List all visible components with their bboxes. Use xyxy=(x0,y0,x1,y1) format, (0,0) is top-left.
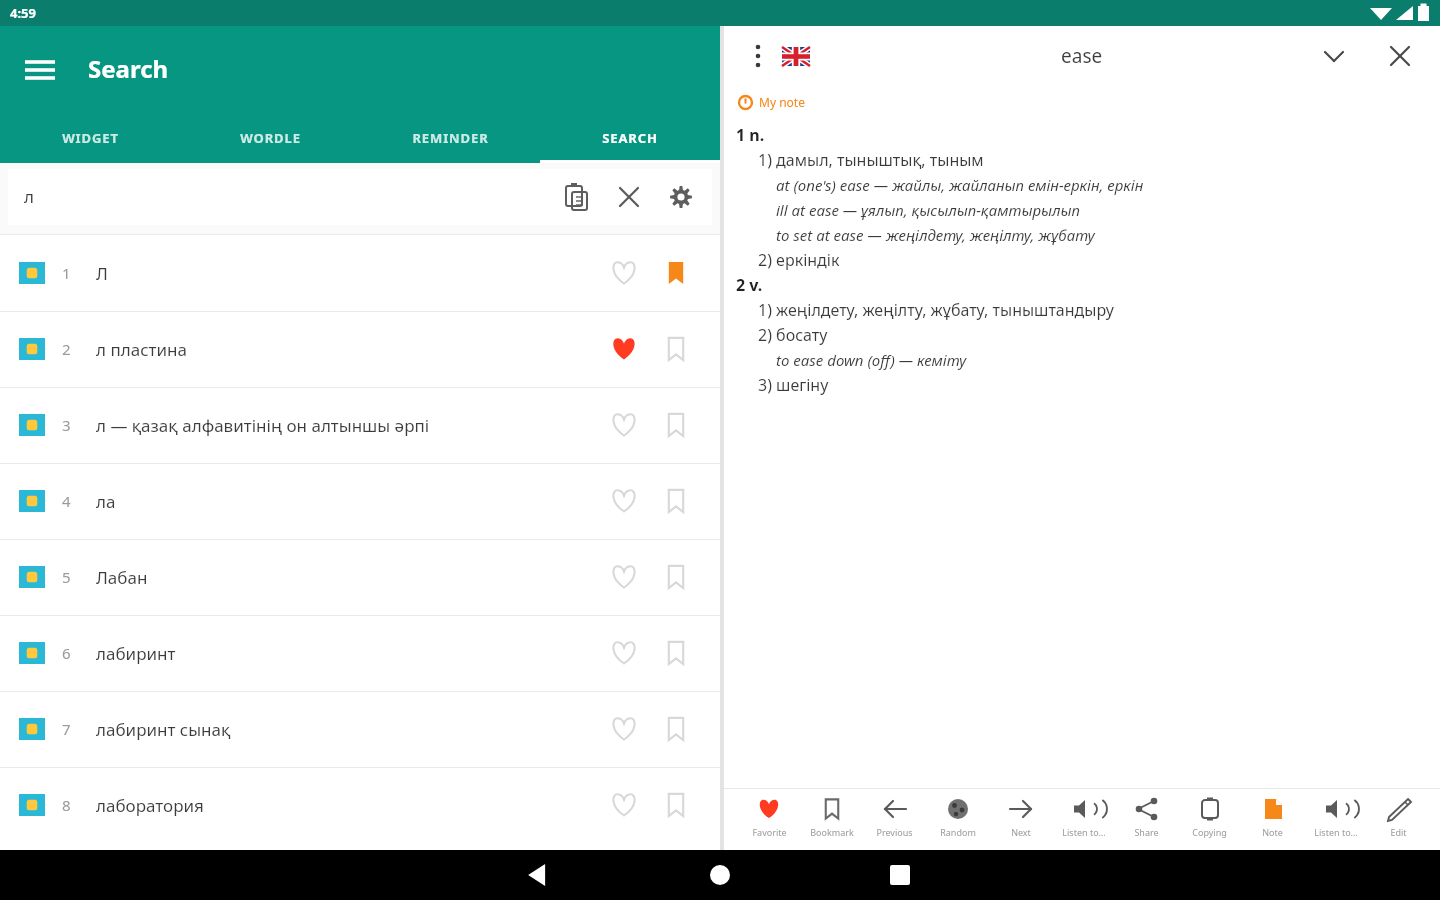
button[interactable]: Add to favourites xyxy=(602,707,646,751)
staticText: at (one's) ease — жайлы, жайланып емін-е… xyxy=(776,175,1144,195)
button[interactable]: Add to favourites xyxy=(602,479,646,523)
button[interactable]: Favorite xyxy=(738,788,800,850)
staticText: Next xyxy=(1011,826,1031,838)
staticText: 2) еркіндік xyxy=(758,249,840,271)
staticText: Search xyxy=(88,52,169,85)
staticText: 1 n. xyxy=(736,124,765,146)
staticText: 2 v. xyxy=(736,274,763,296)
button[interactable]: 2 xyxy=(0,311,720,387)
staticText: WORDLE xyxy=(240,129,301,147)
button[interactable]: Add bookmark xyxy=(654,555,698,599)
button[interactable]: Bookmark xyxy=(800,788,863,850)
button[interactable]: Add to favourites xyxy=(602,251,646,295)
button[interactable]: л xyxy=(8,169,712,225)
staticText: лаборатория xyxy=(96,794,204,817)
button[interactable]: REMINDER xyxy=(360,113,540,163)
button[interactable]: Copying xyxy=(1178,788,1241,850)
button[interactable]: More options xyxy=(740,38,776,74)
button[interactable]: Open navigation menu xyxy=(18,48,62,92)
button[interactable]: Remove from favourites xyxy=(602,327,646,371)
staticText: My note xyxy=(759,94,805,110)
staticText: 1) жеңілдету, жеңілту, жұбату, тыныштанд… xyxy=(758,299,1114,321)
staticText: Лабан xyxy=(96,566,148,589)
button[interactable]: Previous xyxy=(863,788,926,850)
button[interactable]: 4 xyxy=(0,463,720,539)
staticText: лабиринт xyxy=(96,642,176,665)
button[interactable]: Random xyxy=(926,788,989,850)
button[interactable]: Add to favourites xyxy=(602,403,646,447)
button[interactable]: Add to favourites xyxy=(602,631,646,675)
staticText: Share xyxy=(1134,826,1159,838)
staticText: 3) шегіну xyxy=(758,374,829,396)
staticText: 6 xyxy=(62,643,71,663)
button[interactable]: 7 xyxy=(0,691,720,767)
button[interactable]: Listen to… xyxy=(1052,788,1115,850)
button[interactable]: Add bookmark xyxy=(654,479,698,523)
staticText: ла xyxy=(96,490,116,513)
button[interactable]: WIDGET xyxy=(0,113,180,163)
staticText: л xyxy=(24,185,34,208)
button[interactable]: Note xyxy=(1241,788,1304,850)
staticText: SEARCH xyxy=(602,129,658,147)
staticText: Note xyxy=(1262,826,1283,838)
staticText: л — қазақ алфавитінің он алтыншы әрпі xyxy=(96,414,430,437)
button[interactable]: Add bookmark xyxy=(654,403,698,447)
button[interactable]: Search settings xyxy=(664,180,698,214)
button[interactable]: Edit xyxy=(1367,788,1430,850)
button[interactable]: 1 xyxy=(0,235,720,311)
button[interactable]: 8 xyxy=(0,767,720,843)
button[interactable]: Add bookmark xyxy=(654,327,698,371)
button[interactable]: Clear search xyxy=(612,180,646,214)
staticText: Edit xyxy=(1390,826,1407,838)
staticText: to ease down (off) — кеміту xyxy=(776,350,967,370)
button[interactable]: 3 xyxy=(0,387,720,463)
button[interactable]: SEARCH xyxy=(540,113,720,163)
button[interactable]: Add bookmark xyxy=(654,783,698,827)
staticText: REMINDER xyxy=(412,129,489,147)
button[interactable]: Listen to… xyxy=(1304,788,1367,850)
staticText: 4:59 xyxy=(10,4,36,22)
staticText: Listen to… xyxy=(1314,826,1358,838)
button[interactable]: Add to favourites xyxy=(602,555,646,599)
staticText: 7 xyxy=(62,719,71,739)
staticText: 3 xyxy=(62,415,71,435)
staticText: 1) дамыл, тыныштық, тыным xyxy=(758,149,984,171)
button[interactable]: Add bookmark xyxy=(654,707,698,751)
staticText: Favorite xyxy=(752,826,787,838)
staticText: 5 xyxy=(62,567,71,587)
button[interactable]: Close xyxy=(1378,34,1422,78)
button[interactable]: Add bookmark xyxy=(654,631,698,675)
staticText: Random xyxy=(940,826,976,838)
button[interactable]: WORDLE xyxy=(180,113,360,163)
staticText: ill at ease — ұялып, қысылып-қамтырылып xyxy=(776,200,1080,220)
staticText: Bookmark xyxy=(810,826,854,838)
button[interactable]: Paste from clipboard xyxy=(560,180,594,214)
button[interactable]: My note xyxy=(738,86,805,118)
button[interactable]: 6 xyxy=(0,615,720,691)
button[interactable]: Collapse xyxy=(1312,34,1356,78)
staticText: лабиринт сынақ xyxy=(96,718,231,741)
staticText: Copying xyxy=(1192,826,1227,838)
staticText: to set at ease — жеңілдету, жеңілту, жұб… xyxy=(776,225,1095,245)
button[interactable]: Share xyxy=(1115,788,1178,850)
staticText: Listen to… xyxy=(1062,826,1106,838)
button[interactable]: Remove bookmark xyxy=(654,251,698,295)
button[interactable]: Add to favourites xyxy=(602,783,646,827)
staticText: л пластина xyxy=(96,338,187,361)
staticText: 2) босату xyxy=(758,324,828,346)
staticText: 1 xyxy=(62,263,71,283)
staticText: ease xyxy=(1061,43,1103,69)
staticText: 2 xyxy=(62,339,71,359)
staticText: 8 xyxy=(62,795,71,815)
button[interactable]: 5 xyxy=(0,539,720,615)
staticText: Л xyxy=(96,262,108,285)
staticText: WIDGET xyxy=(62,129,119,147)
button[interactable]: Next xyxy=(989,788,1052,850)
staticText: 4 xyxy=(62,491,71,511)
button[interactable]: Source language English xyxy=(778,38,814,74)
staticText: Previous xyxy=(876,826,913,838)
